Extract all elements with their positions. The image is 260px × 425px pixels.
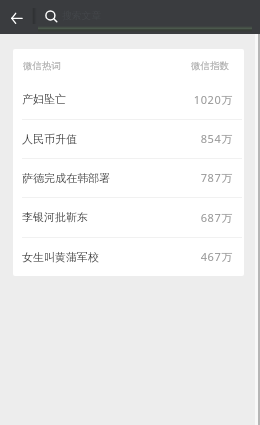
staticText: 787万 <box>200 170 233 185</box>
button[interactable]: 萨德完成在韩部署 <box>13 158 244 197</box>
staticText: 产妇坠亡 <box>22 92 66 106</box>
staticText: 人民币升值 <box>22 132 77 146</box>
button[interactable]: 李银河批靳东 <box>13 197 244 237</box>
button[interactable]: 女生叫黄蒲军校 <box>13 237 244 276</box>
staticText: 李银河批靳东 <box>22 210 88 224</box>
staticText: 微信热词 <box>23 60 61 72</box>
staticText: 1020万 <box>193 92 233 107</box>
staticText: 萨德完成在韩部署 <box>22 171 110 185</box>
staticText: 微信指数 <box>191 60 229 72</box>
button[interactable]: 产妇坠亡 <box>13 79 244 119</box>
button[interactable]: 人民币升值 <box>13 119 244 158</box>
button[interactable]: Search <box>38 0 252 34</box>
button[interactable]: Back <box>0 0 33 34</box>
staticText: 467万 <box>200 249 233 264</box>
staticText: 女生叫黄蒲军校 <box>22 250 99 264</box>
staticText: 854万 <box>200 131 233 146</box>
staticText: 687万 <box>200 210 233 225</box>
